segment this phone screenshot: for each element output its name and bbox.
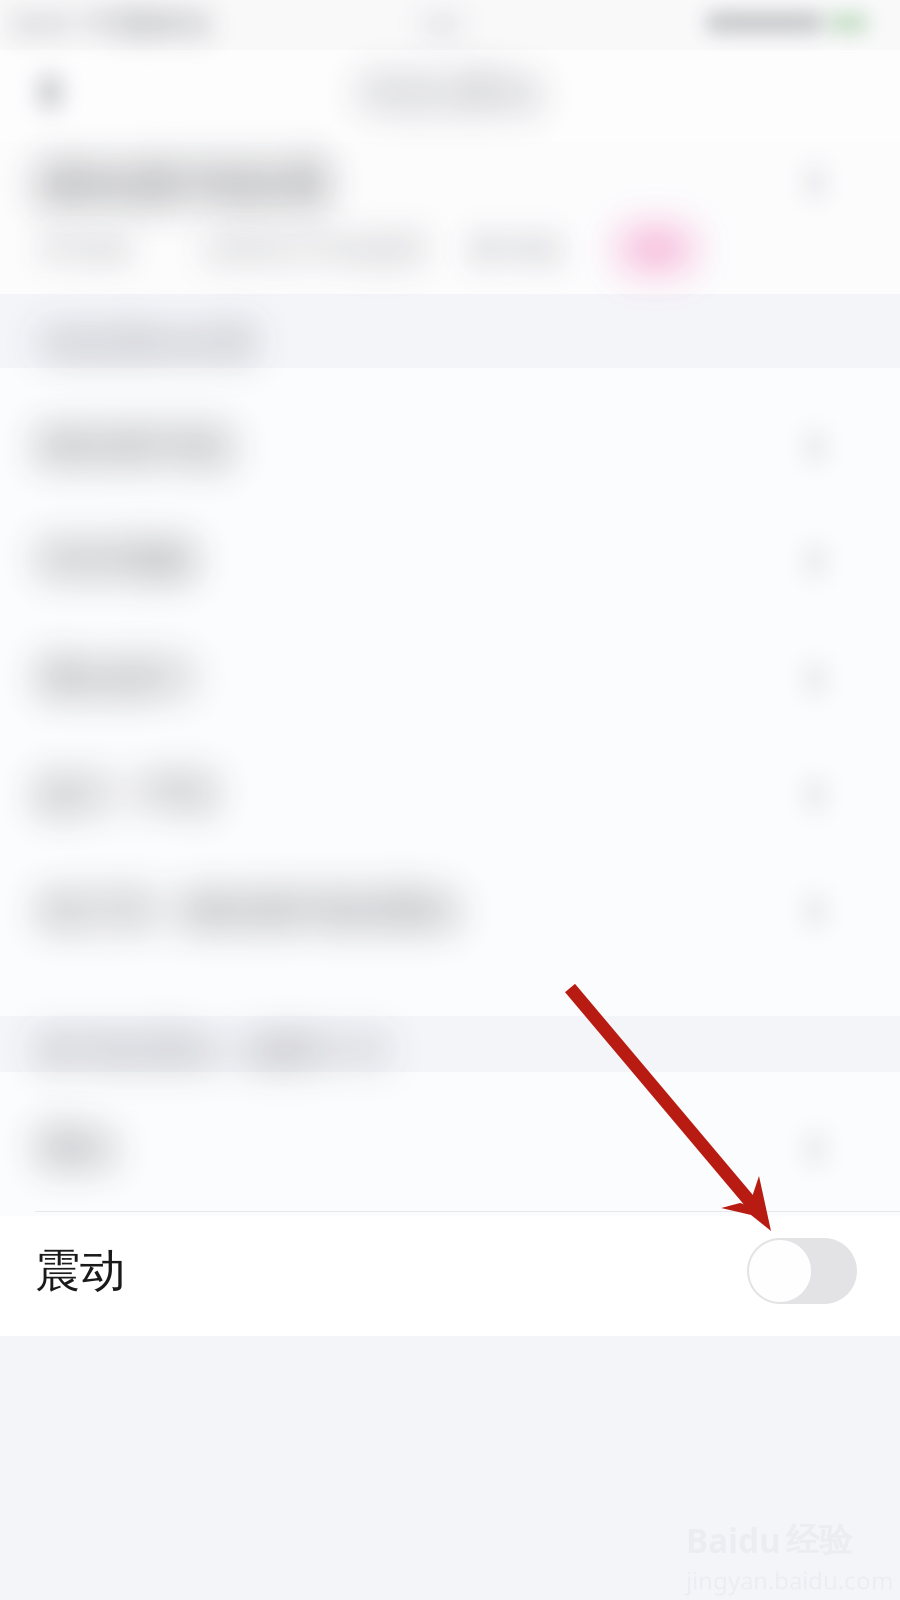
staticText: 通知显示 (35, 234, 195, 283)
staticText: 免打扰 接收新消息通知 (35, 466, 459, 515)
staticText: 语音视频 (35, 116, 195, 165)
button[interactable]: Back (0, 0, 86, 98)
staticText: 通知 (35, 704, 115, 753)
staticText: 经验 (786, 1520, 852, 1561)
staticText: Baidu (686, 1518, 781, 1562)
button[interactable]: 接收新消息 (0, 0, 900, 114)
button[interactable]: 语音视频 (0, 0, 900, 114)
staticText: 提示 声音 (35, 350, 219, 399)
button[interactable]: 通知 (0, 0, 900, 114)
button[interactable]: 震动 (0, 1212, 900, 1330)
button[interactable]: 提示 声音 (0, 0, 900, 114)
staticText: 接收新消息 (35, 2, 235, 51)
staticText: 震动 (35, 1243, 125, 1299)
button[interactable]: 通知显示 (0, 0, 900, 114)
button[interactable]: 接收新消息通 (0, 0, 900, 300)
staticText: 新消息通知 提醒方式 (35, 608, 390, 654)
button[interactable]: 免打扰 接收新消息通知 (0, 0, 900, 114)
